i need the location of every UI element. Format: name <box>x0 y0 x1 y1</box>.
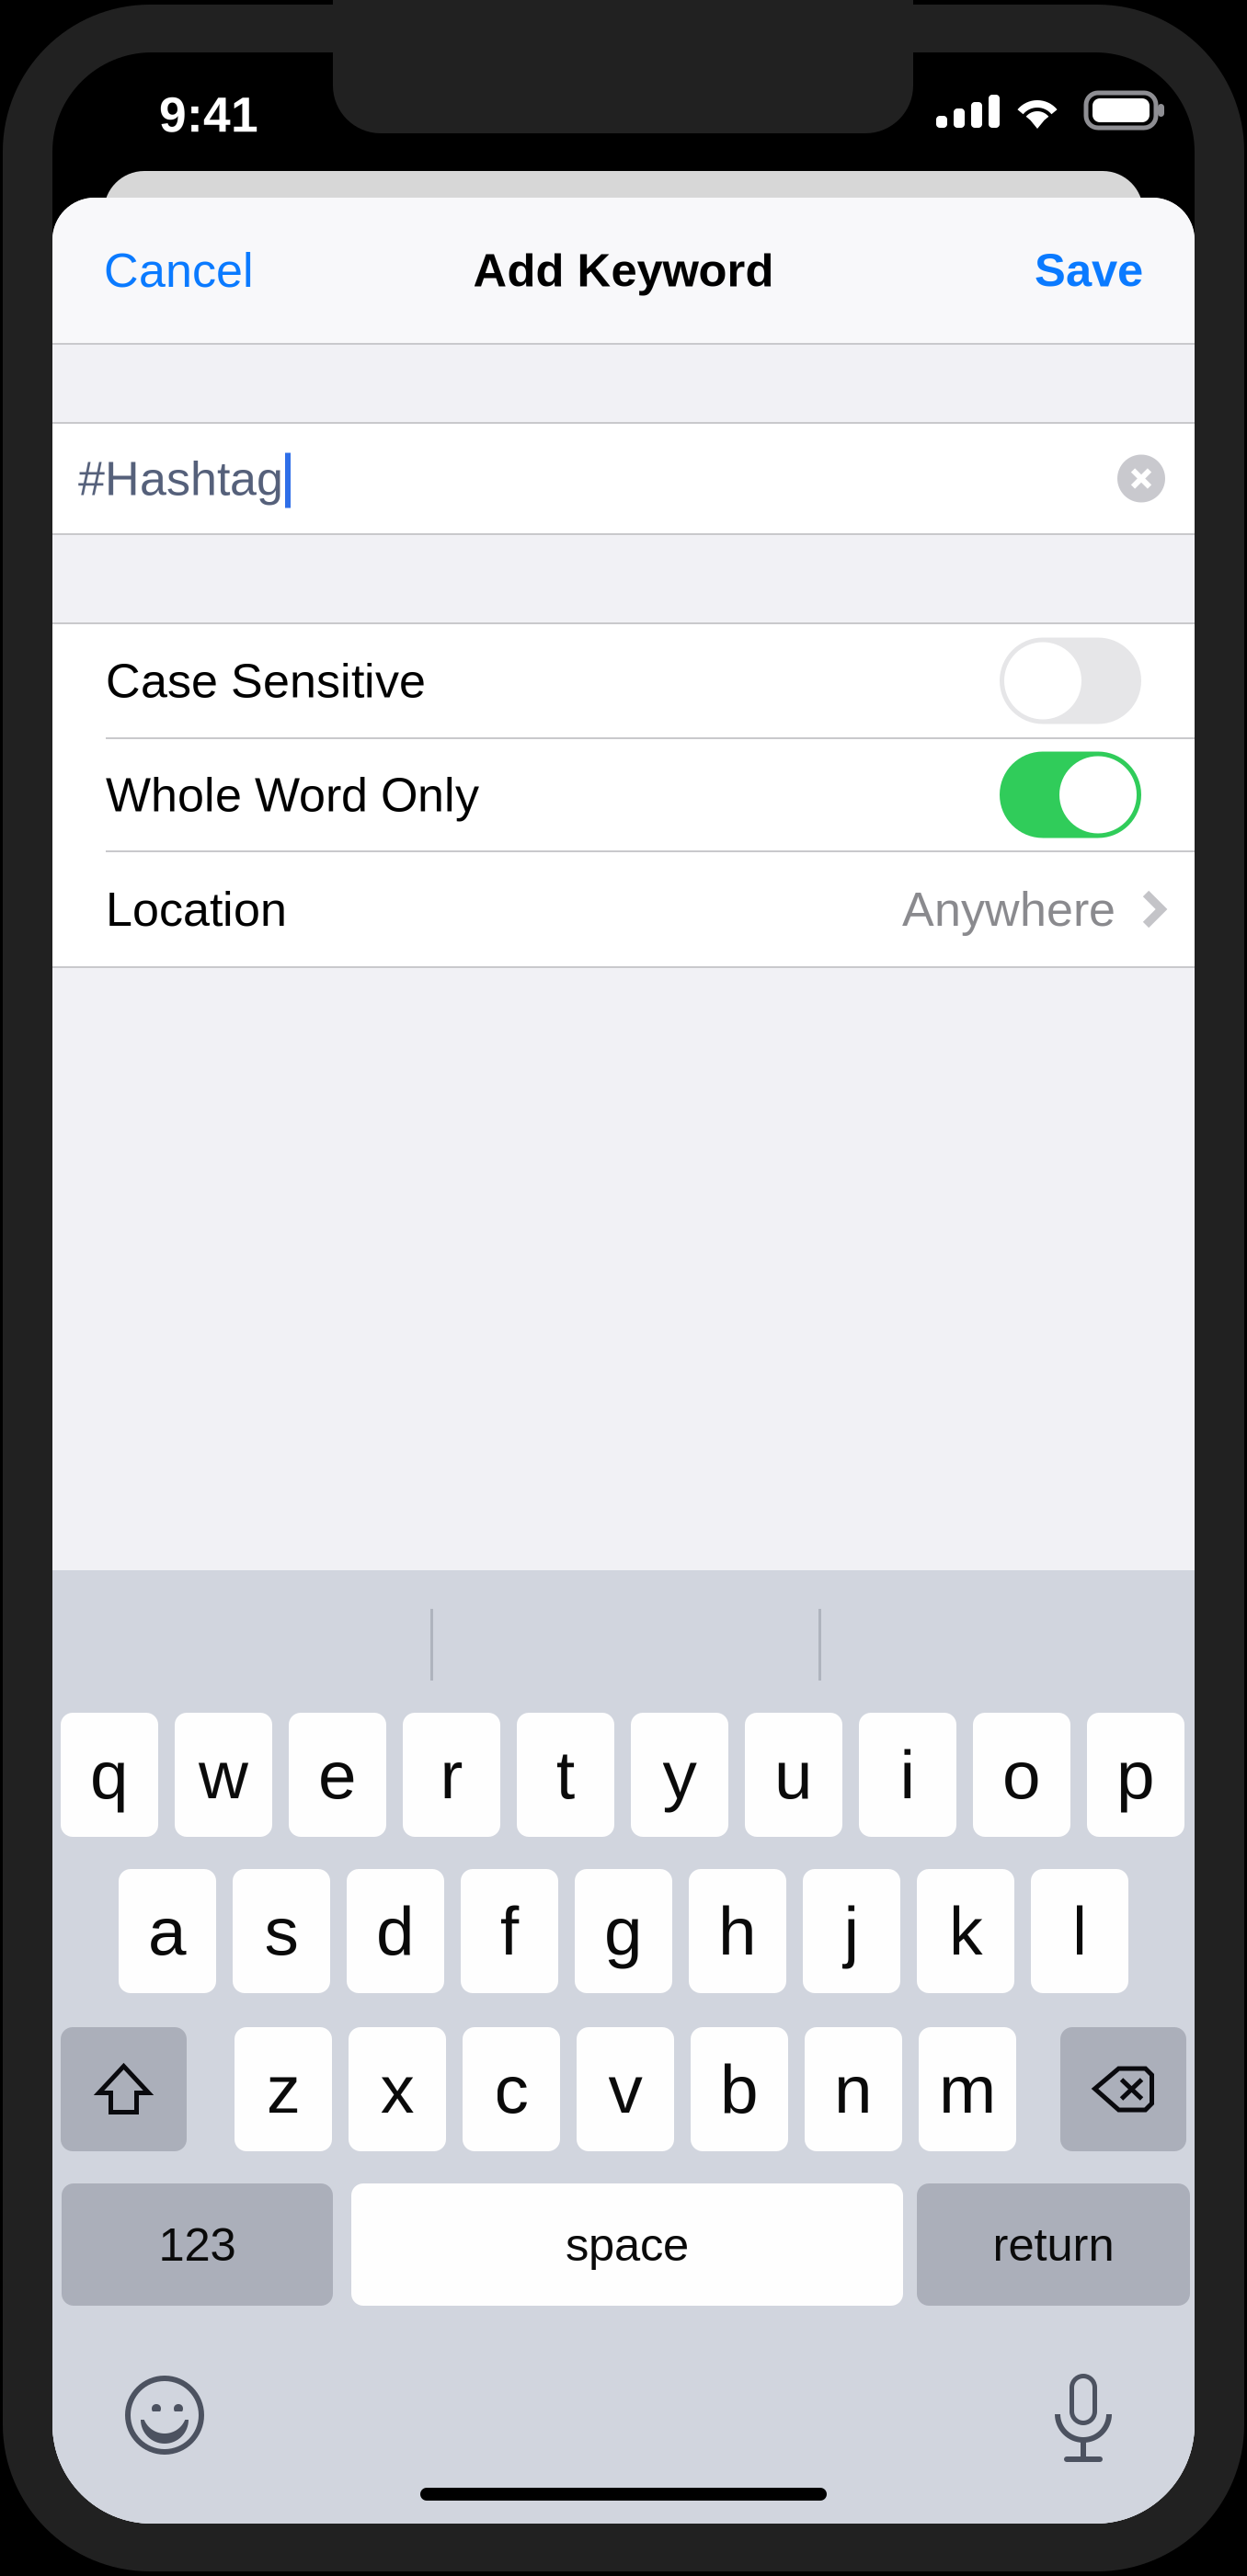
staticText: m <box>939 2051 996 2128</box>
button[interactable]: s <box>233 1869 330 1993</box>
button[interactable]: space <box>351 2183 903 2306</box>
staticText: 9:41 <box>159 87 258 142</box>
button[interactable]: v <box>577 2027 674 2151</box>
staticText: Location <box>106 883 287 936</box>
staticText: Case Sensitive <box>106 654 426 708</box>
button[interactable]: m <box>919 2027 1016 2151</box>
button[interactable]: Case Sensitive <box>52 624 1195 737</box>
staticText: f <box>500 1893 519 1969</box>
button[interactable]: q <box>61 1713 158 1837</box>
button[interactable]: x <box>349 2027 446 2151</box>
button[interactable]: Clear text <box>1114 451 1169 506</box>
staticText: return <box>993 2219 1114 2271</box>
button[interactable]: c <box>463 2027 560 2151</box>
staticText: u <box>774 1736 813 1813</box>
button[interactable]: Cancel <box>52 198 305 343</box>
staticText: o <box>1002 1736 1041 1813</box>
staticText: v <box>608 2051 642 2128</box>
staticText: 123 <box>159 2219 236 2271</box>
staticText: t <box>556 1736 575 1813</box>
button[interactable]: p <box>1087 1713 1184 1837</box>
staticText: #Hashtag <box>78 452 283 505</box>
staticText: Cancel <box>104 244 254 297</box>
staticText: s <box>264 1893 298 1969</box>
button[interactable]: 123 <box>62 2183 333 2306</box>
staticText: c <box>494 2051 528 2128</box>
button[interactable]: Shift <box>61 2027 187 2151</box>
staticText: p <box>1116 1736 1155 1813</box>
button[interactable]: Location <box>52 852 1195 966</box>
button[interactable]: j <box>803 1869 900 1993</box>
button[interactable]: b <box>691 2027 788 2151</box>
button[interactable]: d <box>347 1869 444 1993</box>
staticText: j <box>844 1893 859 1969</box>
staticText: i <box>900 1736 915 1813</box>
staticText: b <box>720 2051 759 2128</box>
button[interactable]: Emoji <box>128 2378 201 2452</box>
staticText: l <box>1072 1893 1087 1969</box>
button[interactable]: Delete <box>1060 2027 1186 2151</box>
button[interactable]: y <box>631 1713 728 1837</box>
button[interactable]: w <box>175 1713 272 1837</box>
button[interactable]: z <box>235 2027 332 2151</box>
staticText: g <box>604 1893 643 1969</box>
button[interactable]: l <box>1031 1869 1128 1993</box>
staticText: y <box>663 1736 697 1813</box>
staticText: n <box>834 2051 873 2128</box>
staticText: a <box>148 1893 187 1969</box>
button[interactable]: o <box>973 1713 1070 1837</box>
staticText: Save <box>1035 244 1143 296</box>
staticText: e <box>318 1736 357 1813</box>
staticText: x <box>380 2051 414 2128</box>
button[interactable]: t <box>517 1713 614 1837</box>
staticText: r <box>440 1736 463 1813</box>
staticText: Anywhere <box>902 883 1115 936</box>
button[interactable]: i <box>859 1713 956 1837</box>
button[interactable]: n <box>805 2027 902 2151</box>
button[interactable]: k <box>917 1869 1014 1993</box>
button[interactable]: return <box>917 2183 1190 2306</box>
staticText: w <box>199 1736 248 1813</box>
button[interactable]: h <box>689 1869 786 1993</box>
staticText: z <box>266 2051 300 2128</box>
button[interactable]: g <box>575 1869 672 1993</box>
staticText: h <box>718 1893 757 1969</box>
staticText: q <box>90 1736 129 1813</box>
button[interactable]: e <box>289 1713 386 1837</box>
staticText: k <box>949 1893 983 1969</box>
button[interactable]: Save <box>983 198 1195 343</box>
staticText: d <box>376 1893 415 1969</box>
button[interactable]: r <box>403 1713 500 1837</box>
staticText: space <box>566 2219 689 2271</box>
button[interactable]: a <box>119 1869 216 1993</box>
button[interactable]: Dictate <box>1057 2374 1110 2462</box>
button[interactable]: u <box>745 1713 842 1837</box>
button[interactable]: Whole Word Only <box>52 739 1195 850</box>
staticText: Add Keyword <box>473 244 774 296</box>
button[interactable]: f <box>461 1869 558 1993</box>
staticText: Whole Word Only <box>106 768 479 822</box>
